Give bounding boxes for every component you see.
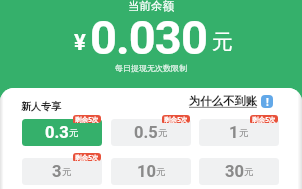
staticText: 10 — [137, 162, 156, 181]
button[interactable]: 3 — [22, 158, 102, 185]
staticText: 3 — [52, 162, 62, 181]
staticText: 1 — [229, 123, 239, 142]
staticText: 元 — [239, 127, 249, 139]
staticText: ¥ — [74, 30, 86, 56]
button[interactable]: 30 — [199, 158, 279, 185]
staticText: 新人专享 — [21, 100, 61, 113]
staticText: 剩余5次 — [164, 115, 188, 123]
staticText: 为什么不到账 — [189, 94, 257, 108]
staticText: 剩余5次 — [252, 115, 276, 123]
button[interactable]: 0.5 — [111, 119, 191, 146]
button[interactable]: 10 — [111, 158, 191, 185]
staticText: 0.030 — [90, 10, 207, 56]
staticText: 0.5 — [134, 123, 158, 142]
staticText: ! — [266, 95, 269, 108]
staticText: 元 — [69, 127, 79, 139]
staticText: 元 — [156, 166, 166, 178]
staticText: 元 — [244, 166, 254, 178]
staticText: 元 — [62, 166, 72, 178]
staticText: 0.3 — [45, 123, 69, 142]
other: 说明 — [261, 95, 273, 108]
button[interactable]: 1 — [199, 119, 279, 146]
staticText: 元 — [158, 127, 168, 139]
staticText: 剩余5次 — [75, 115, 99, 123]
staticText: 30 — [225, 162, 244, 181]
staticText: 每日提现无次数限制 — [115, 63, 187, 73]
staticText: 剩余5次 — [75, 153, 99, 161]
staticText: 元 — [212, 29, 233, 55]
button[interactable]: 为什么不到账 — [189, 94, 273, 108]
staticText: 当前余额 — [128, 0, 174, 13]
button[interactable]: 0.3 — [22, 119, 102, 146]
